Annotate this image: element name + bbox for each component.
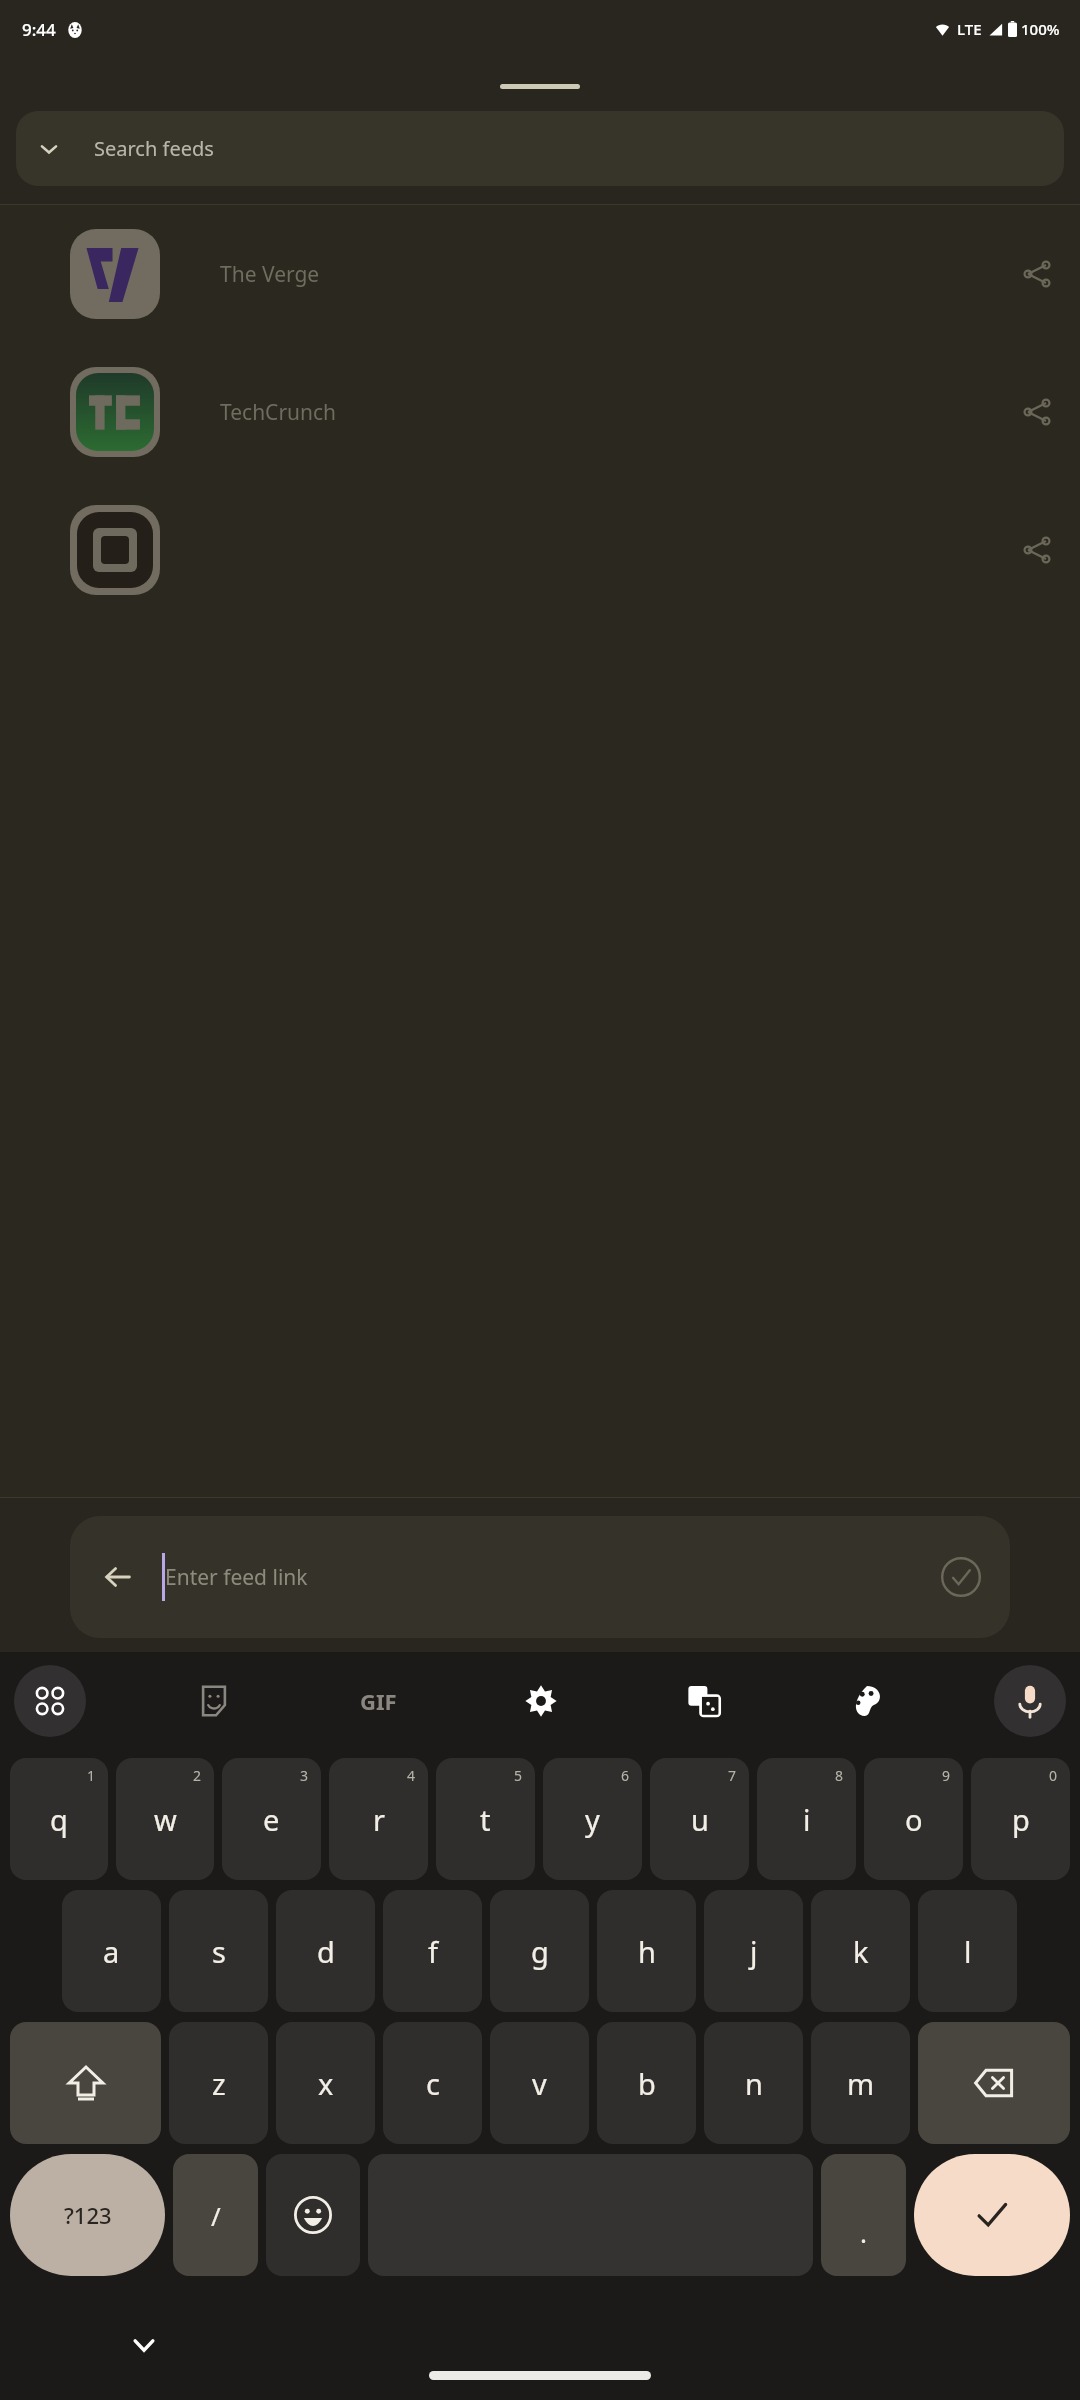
staticText: 1 [87,1766,96,1785]
button[interactable]: Apps [14,1665,86,1737]
staticText: c [426,2064,440,2103]
staticText: Search feeds [94,135,214,162]
staticText: v [532,2064,547,2103]
button[interactable]: ?123 [10,2154,165,2276]
staticText: Enter feed link [165,1563,308,1592]
button[interactable]: h [597,1890,696,2012]
button[interactable]: b [597,2022,696,2144]
staticText: d [317,1932,335,1971]
staticText: g [531,1932,549,1971]
button[interactable]: 2 [116,1758,214,1880]
button[interactable]: x [276,2022,375,2144]
button[interactable]: Expand [16,111,1064,186]
staticText: 4 [407,1766,416,1785]
button[interactable]: Stickers [178,1665,250,1737]
button[interactable]: 5 [436,1758,535,1880]
staticText: y [585,1800,600,1839]
button[interactable]: j [704,1890,803,2012]
button[interactable]: Voice input [994,1665,1066,1737]
button[interactable]: m [811,2022,910,2144]
button[interactable]: Share The Verge [1014,251,1060,297]
staticText: 6 [621,1766,630,1785]
button[interactable]: Share [1014,527,1060,573]
button[interactable]: Confirm [938,1554,984,1600]
staticText: e [263,1800,280,1839]
button[interactable]: / [173,2154,258,2276]
button[interactable]: g [490,1890,589,2012]
staticText: 5 [514,1766,523,1785]
staticText: z [212,2064,226,2103]
button[interactable]: Translate [668,1665,740,1737]
button[interactable]: k [811,1890,910,2012]
staticText: a [103,1932,120,1971]
staticText: s [212,1932,226,1971]
button[interactable]: Back [70,1516,1010,1638]
staticText: f [428,1932,438,1971]
button[interactable]: The Verge [0,205,1080,343]
button[interactable]: v [490,2022,589,2144]
button[interactable]: f [383,1890,482,2012]
button[interactable]: Settings [505,1665,577,1737]
button[interactable]: 8 [757,1758,856,1880]
staticText: 7 [728,1766,737,1785]
staticText: The Verge [220,260,320,289]
staticText: w [154,1800,177,1839]
button[interactable]: 6 [543,1758,642,1880]
staticText: l [964,1932,972,1971]
staticText: ?123 [64,2200,112,2230]
button[interactable]: s [169,1890,268,2012]
staticText: . [860,2215,867,2250]
staticText: x [318,2064,334,2103]
button[interactable]: 7 [650,1758,749,1880]
staticText: u [691,1800,709,1839]
button[interactable]: c [383,2022,482,2144]
button[interactable]: 1 [10,1758,108,1880]
button[interactable]: l [918,1890,1017,2012]
button[interactable]: Back [96,1555,140,1599]
button[interactable]: 3 [222,1758,321,1880]
button[interactable]: Share [0,481,1080,619]
staticText: k [853,1932,869,1971]
button[interactable]: d [276,1890,375,2012]
button[interactable]: Hide keyboard [118,2319,170,2371]
staticText: q [50,1800,68,1839]
staticText: m [847,2064,875,2103]
button[interactable]: z [169,2022,268,2144]
staticText: LTE [957,19,982,39]
button[interactable]: 9 [864,1758,963,1880]
button[interactable]: Emoji [266,2154,360,2276]
button[interactable]: a [62,1890,161,2012]
button[interactable]: TechCrunch [0,343,1080,481]
button[interactable]: Enter [914,2154,1070,2276]
staticText: / [211,2198,221,2233]
staticText: GIF [360,1686,397,1716]
other: Expand [38,138,60,160]
staticText: 9:44 [22,18,56,41]
button[interactable]: n [704,2022,803,2144]
button[interactable]: Share TechCrunch [1014,389,1060,435]
staticText: 2 [193,1766,202,1785]
staticText: r [373,1800,385,1839]
button[interactable]: GIF [342,1665,414,1737]
staticText: h [638,1932,656,1971]
button[interactable]: . [821,2154,906,2276]
staticText: 9 [942,1766,951,1785]
staticText: TechCrunch [220,398,337,427]
button[interactable]: Backspace [918,2022,1070,2144]
button[interactable]: Theme [831,1665,903,1737]
staticText: i [803,1800,811,1839]
staticText: t [480,1800,491,1839]
staticText: b [638,2064,656,2103]
staticText: n [745,2064,763,2103]
staticText: 8 [835,1766,844,1785]
staticText: 0 [1049,1766,1058,1785]
staticText: 100% [1021,19,1060,39]
staticText: o [905,1800,923,1839]
button[interactable]: 4 [329,1758,428,1880]
button[interactable]: 0 [971,1758,1070,1880]
staticText: 3 [300,1766,309,1785]
staticText: j [750,1932,758,1971]
button[interactable]: Shift [10,2022,161,2144]
staticText: p [1012,1800,1030,1839]
